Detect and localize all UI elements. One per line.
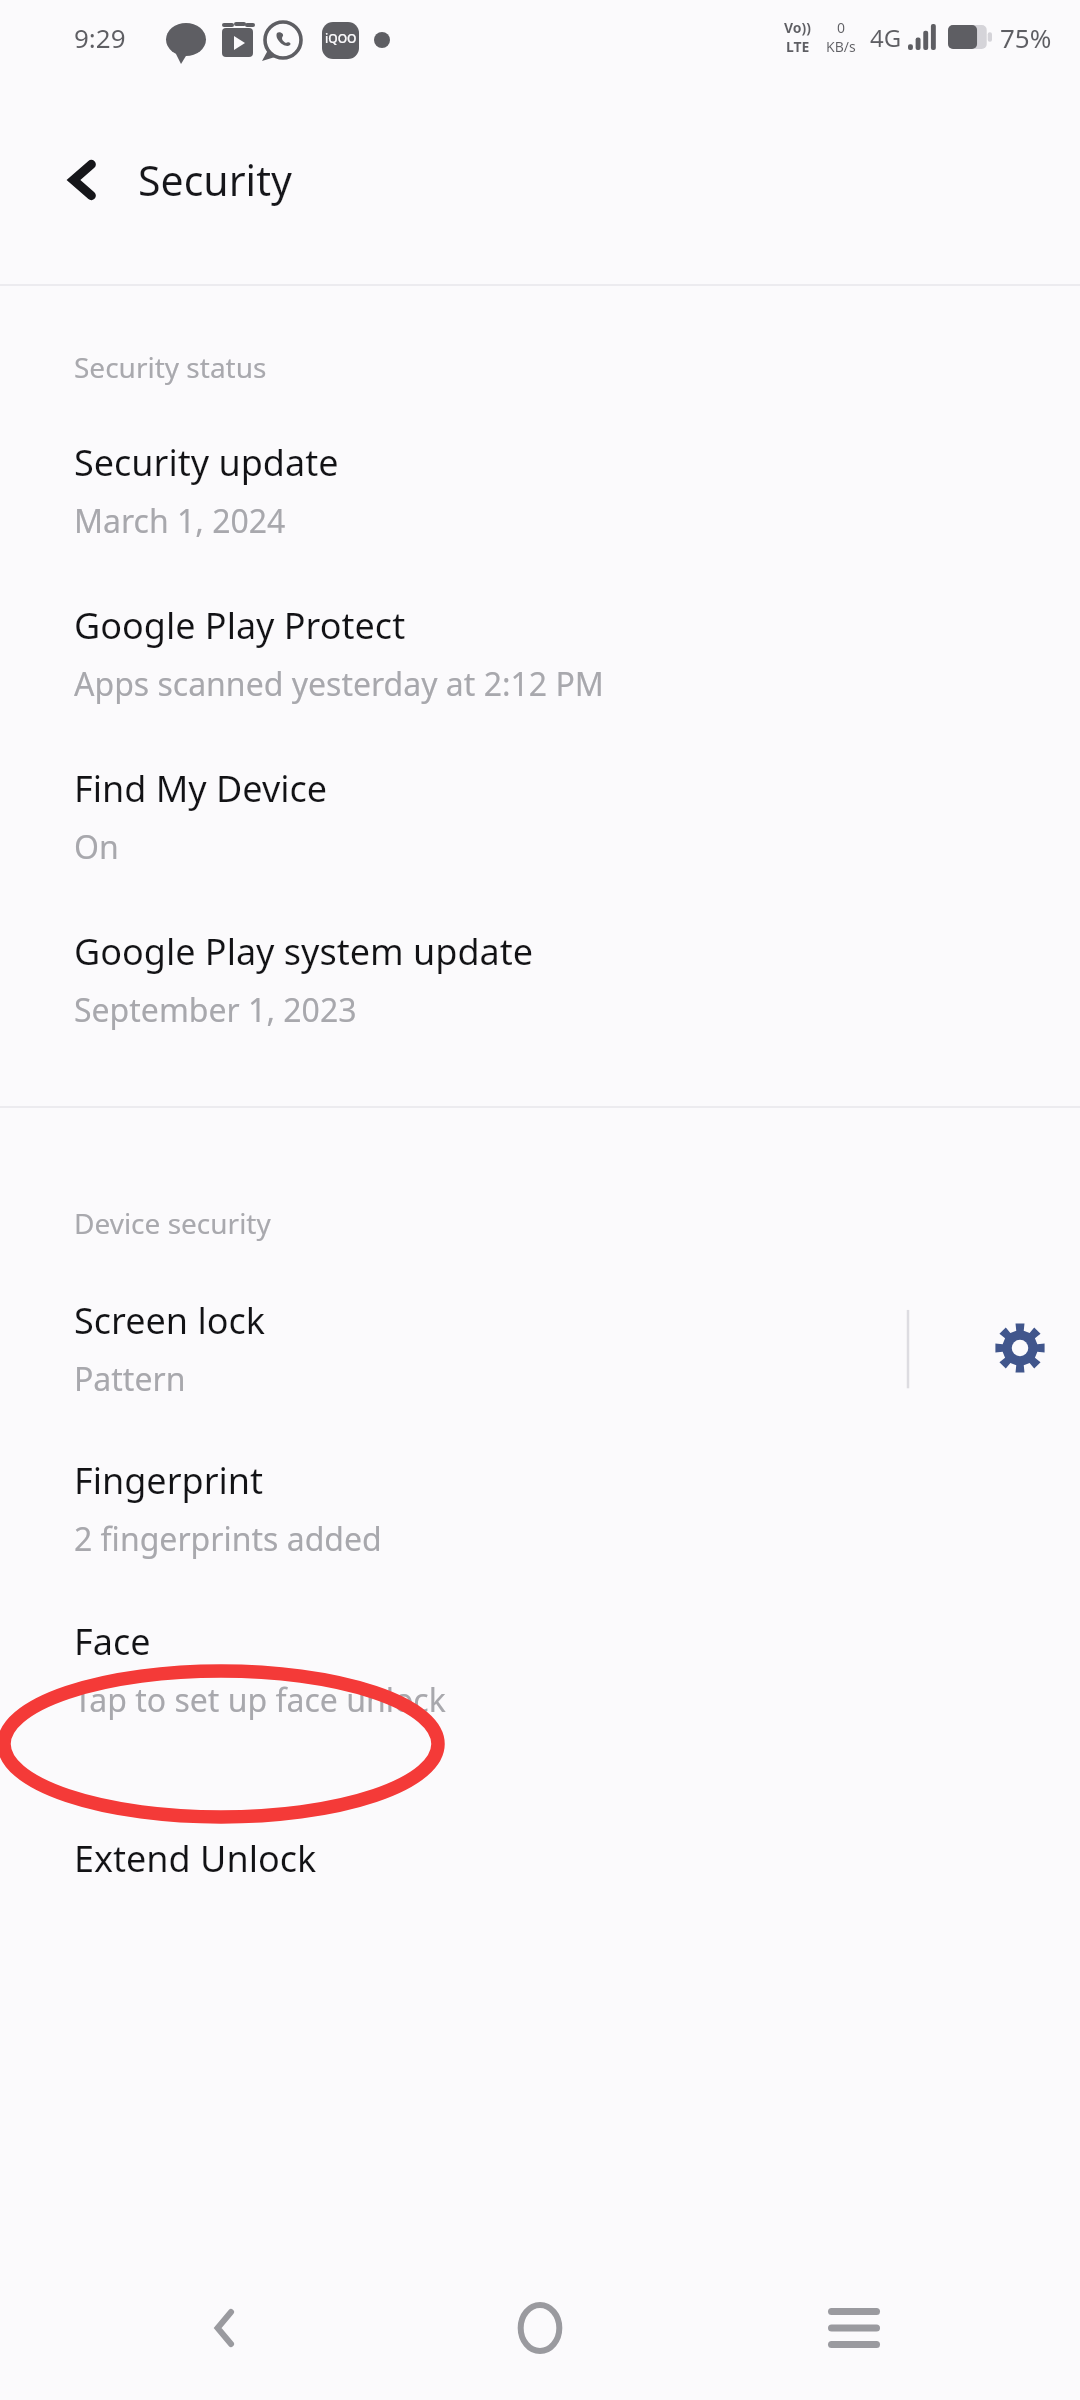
staticText: Apps scanned yesterday at 2:12 PM — [74, 662, 604, 706]
staticText: Security — [138, 152, 292, 208]
staticText: Tap to set up face unlock — [74, 1678, 446, 1722]
staticText: 2 fingerprints added — [74, 1517, 382, 1561]
staticText: LTE — [786, 37, 810, 56]
staticText: 75% — [1000, 20, 1052, 55]
button[interactable]: Extend Unlock — [0, 1722, 1080, 1883]
button[interactable]: Screen lock settings — [976, 1304, 1064, 1392]
button[interactable]: Security update — [0, 386, 1080, 543]
staticText: iQOO — [325, 30, 357, 46]
button[interactable]: Google Play system update — [0, 869, 1080, 1032]
staticText: Fingerprint — [74, 1456, 264, 1505]
staticText: Face — [74, 1617, 151, 1666]
button[interactable]: Face — [0, 1561, 1080, 1722]
staticText: March 1, 2024 — [74, 499, 286, 543]
staticText: September 1, 2023 — [74, 988, 357, 1032]
staticText: Pattern — [74, 1357, 186, 1401]
staticText: On — [74, 825, 119, 869]
staticText: Device security — [74, 1204, 271, 1242]
button[interactable]: Home — [494, 2282, 586, 2374]
staticText: Find My Device — [74, 764, 328, 813]
button[interactable]: Find My Device — [0, 706, 1080, 869]
button[interactable]: Screen lock — [0, 1242, 1080, 1404]
button[interactable]: Back — [52, 148, 116, 212]
staticText: Google Play system update — [74, 927, 534, 976]
staticText: KB/s — [826, 37, 856, 56]
button[interactable]: Recent apps — [808, 2282, 900, 2374]
staticText: Screen lock — [74, 1296, 265, 1345]
staticText: Google Play Protect — [74, 601, 406, 650]
button[interactable]: Google Play Protect — [0, 543, 1080, 706]
staticText: 4G — [870, 21, 902, 54]
button[interactable]: Back — [180, 2282, 272, 2374]
button[interactable]: Fingerprint — [0, 1404, 1080, 1561]
staticText: 0 — [837, 18, 846, 37]
staticText: Security status — [74, 348, 267, 386]
staticText: Extend Unlock — [74, 1834, 317, 1883]
staticText: Security update — [74, 438, 339, 487]
staticText: 9:29 — [74, 20, 126, 55]
staticText: Vo)) — [784, 18, 812, 37]
